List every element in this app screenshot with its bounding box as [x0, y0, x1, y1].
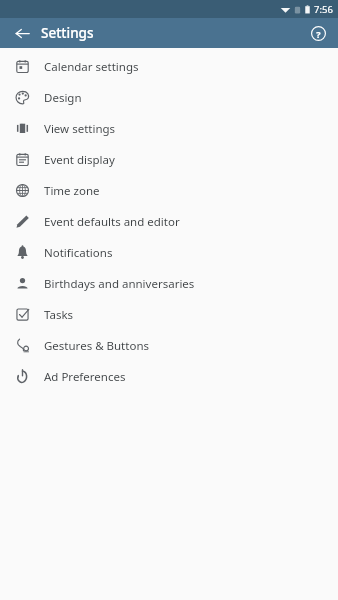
button[interactable]: Birthdays and anniversaries — [0, 268, 338, 299]
button[interactable]: View settings — [0, 113, 338, 144]
staticText: Event defaults and editor — [44, 214, 180, 230]
button[interactable]: Event display — [0, 144, 338, 175]
button[interactable]: Back — [10, 21, 34, 45]
staticText: Ad Preferences — [44, 369, 126, 385]
button[interactable]: Tasks — [0, 299, 338, 330]
staticText: View settings — [44, 121, 116, 137]
staticText: Settings — [41, 24, 94, 42]
staticText: ? — [316, 28, 321, 40]
button[interactable]: Help — [306, 21, 330, 45]
button[interactable]: Event defaults and editor — [0, 206, 338, 237]
button[interactable]: Notifications — [0, 237, 338, 268]
button[interactable]: Time zone — [0, 175, 338, 206]
button[interactable]: Gestures & Buttons — [0, 330, 338, 361]
staticText: Event display — [44, 152, 115, 168]
button[interactable]: Ad Preferences — [0, 361, 338, 392]
button[interactable]: Design — [0, 82, 338, 113]
staticText: Design — [44, 90, 82, 106]
staticText: Time zone — [44, 183, 100, 199]
staticText: Tasks — [44, 307, 74, 323]
staticText: 7:56 — [314, 3, 333, 16]
staticText: Calendar settings — [44, 59, 139, 75]
staticText: Gestures & Buttons — [44, 338, 149, 354]
button[interactable]: Calendar settings — [0, 51, 338, 82]
staticText: Birthdays and anniversaries — [44, 276, 195, 292]
staticText: Notifications — [44, 245, 113, 261]
